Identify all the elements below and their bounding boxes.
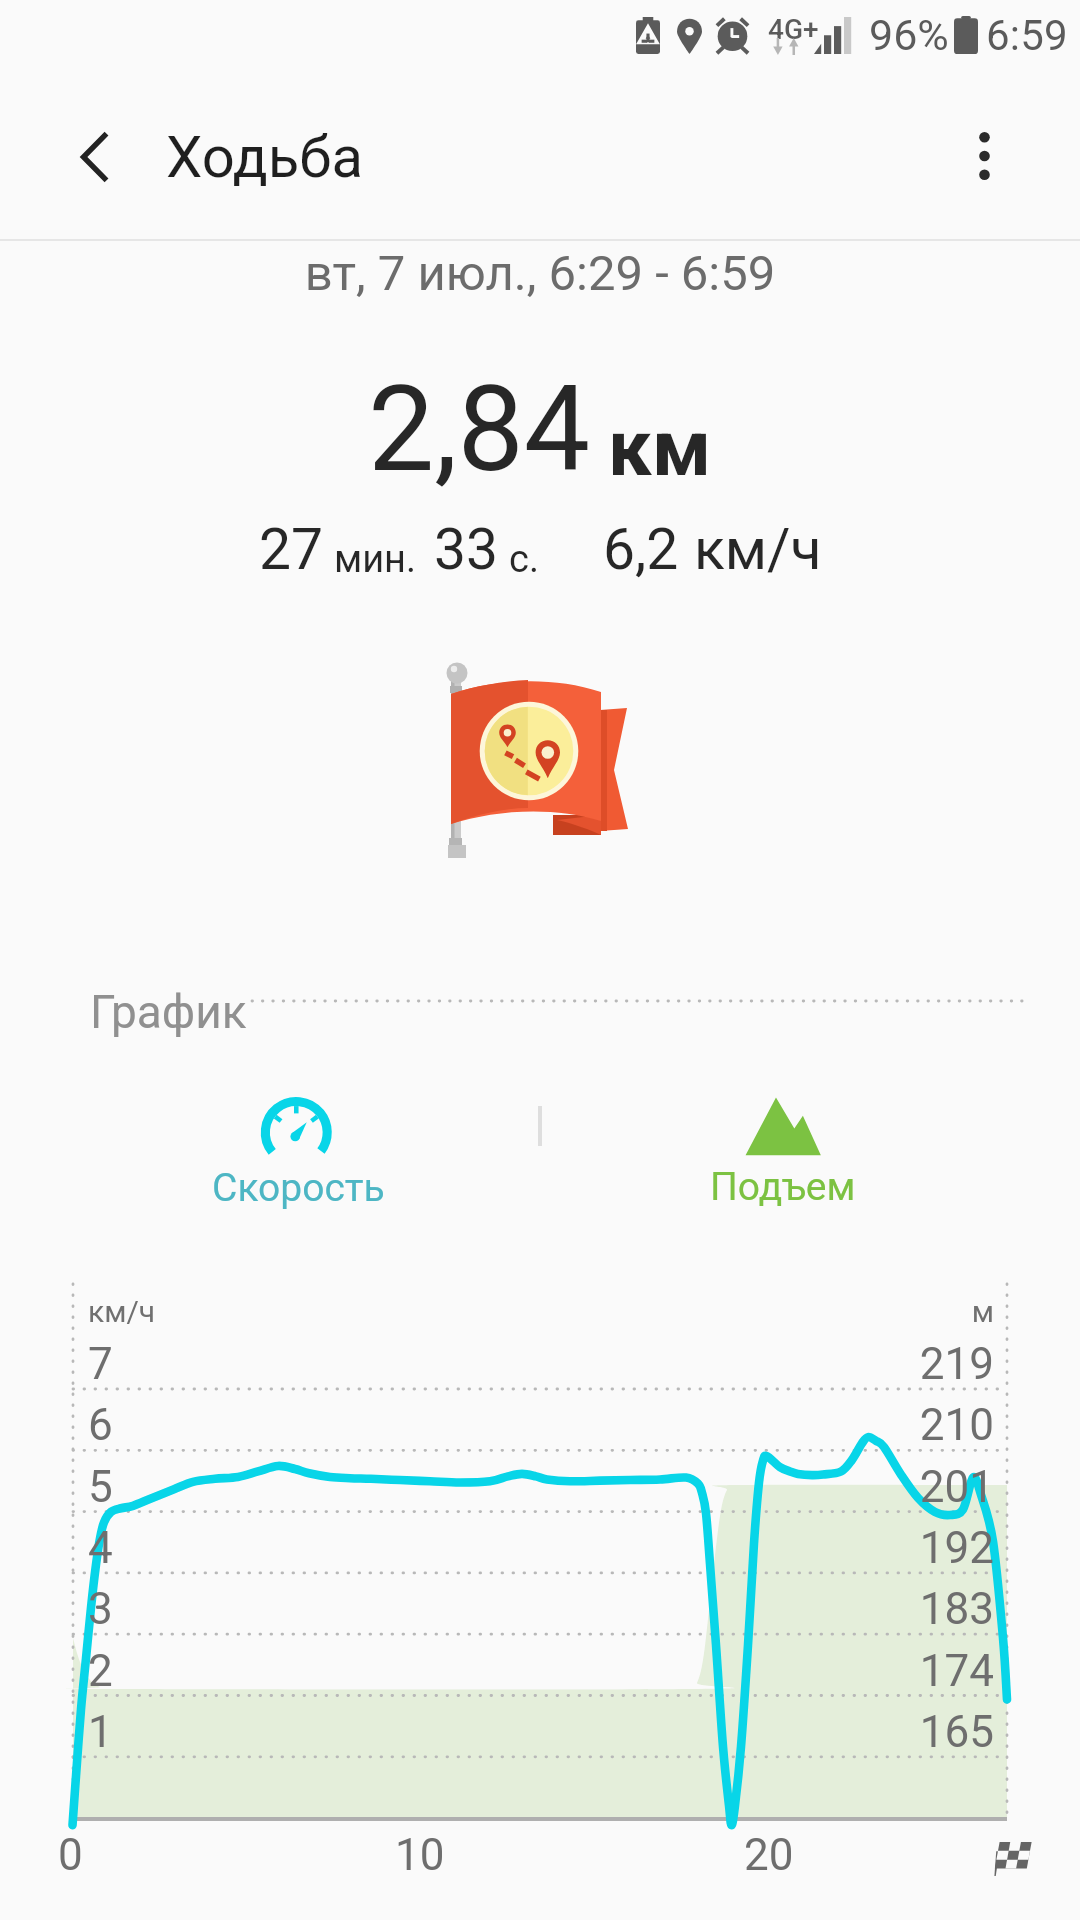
staticText: Подъем	[710, 1164, 856, 1210]
staticText: 174	[820, 1645, 994, 1697]
staticText: 4G+	[768, 13, 819, 46]
staticText: 6,2	[603, 516, 679, 583]
button[interactable]: Back	[59, 109, 131, 205]
staticText: 6:59	[986, 11, 1068, 60]
staticText: Скорость	[212, 1165, 385, 1211]
staticText: 219	[820, 1338, 994, 1390]
staticText: 1	[88, 1706, 113, 1758]
staticText: 10	[395, 1829, 445, 1881]
staticText: 7	[88, 1338, 113, 1390]
staticText: График	[90, 985, 247, 1039]
staticText: 201	[820, 1461, 994, 1513]
button[interactable]: Подъем	[663, 1083, 903, 1233]
button[interactable]: Скорость	[178, 1087, 418, 1237]
staticText: 4	[88, 1522, 113, 1574]
staticText: 5	[88, 1461, 113, 1513]
staticText: км	[608, 403, 712, 494]
staticText: км/ч	[88, 1294, 156, 1329]
staticText: 165	[820, 1706, 994, 1758]
staticText: 0	[58, 1829, 83, 1881]
staticText: км/ч	[694, 516, 822, 583]
staticText: м	[880, 1294, 994, 1329]
button[interactable]: More options	[936, 108, 1032, 204]
staticText: 183	[820, 1583, 994, 1635]
staticText: 27	[259, 516, 324, 583]
staticText: 96%	[869, 10, 949, 60]
staticText: 3	[88, 1583, 113, 1635]
staticText: 2,84	[368, 361, 591, 499]
staticText: 20	[744, 1829, 794, 1881]
staticText: 2	[88, 1645, 113, 1697]
staticText: 210	[820, 1399, 994, 1451]
staticText: 6	[88, 1399, 113, 1451]
staticText: 33	[434, 516, 499, 583]
staticText: Ходьба	[166, 123, 363, 191]
staticText: 192	[820, 1522, 994, 1574]
staticText: с.	[509, 537, 539, 582]
staticText: вт, 7 июл., 6:29 - 6:59	[0, 245, 1080, 302]
staticText: мин.	[334, 537, 417, 582]
